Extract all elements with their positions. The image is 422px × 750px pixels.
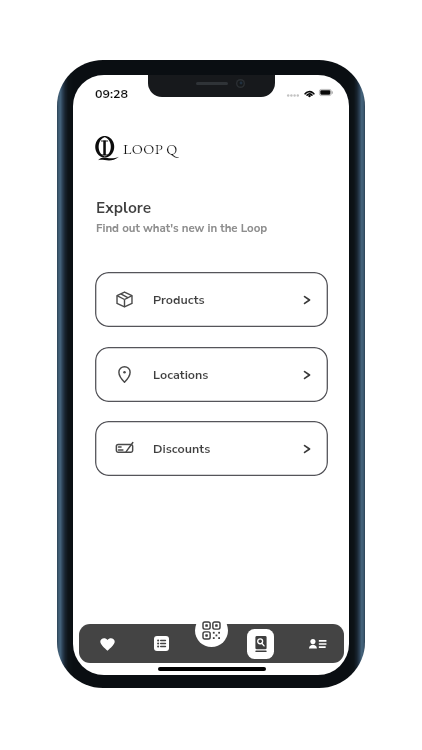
button[interactable]: Scan QR code xyxy=(195,614,228,647)
staticText: Locations xyxy=(153,366,209,383)
staticText: LOOP Q xyxy=(123,139,178,158)
button[interactable]: Discounts xyxy=(95,421,328,476)
button[interactable]: Contacts xyxy=(295,624,339,663)
staticText: Explore xyxy=(96,197,152,218)
staticText: Products xyxy=(153,291,205,308)
staticText: Find out what's new in the Loop xyxy=(96,220,268,236)
staticText: 09:28 xyxy=(95,85,129,102)
button[interactable]: Locations xyxy=(95,347,328,402)
button[interactable]: Products xyxy=(95,272,328,327)
button[interactable]: Orders xyxy=(139,624,183,663)
button[interactable]: Favourites xyxy=(85,624,129,663)
button[interactable]: Search xyxy=(238,624,282,663)
staticText: Discounts xyxy=(153,440,211,457)
